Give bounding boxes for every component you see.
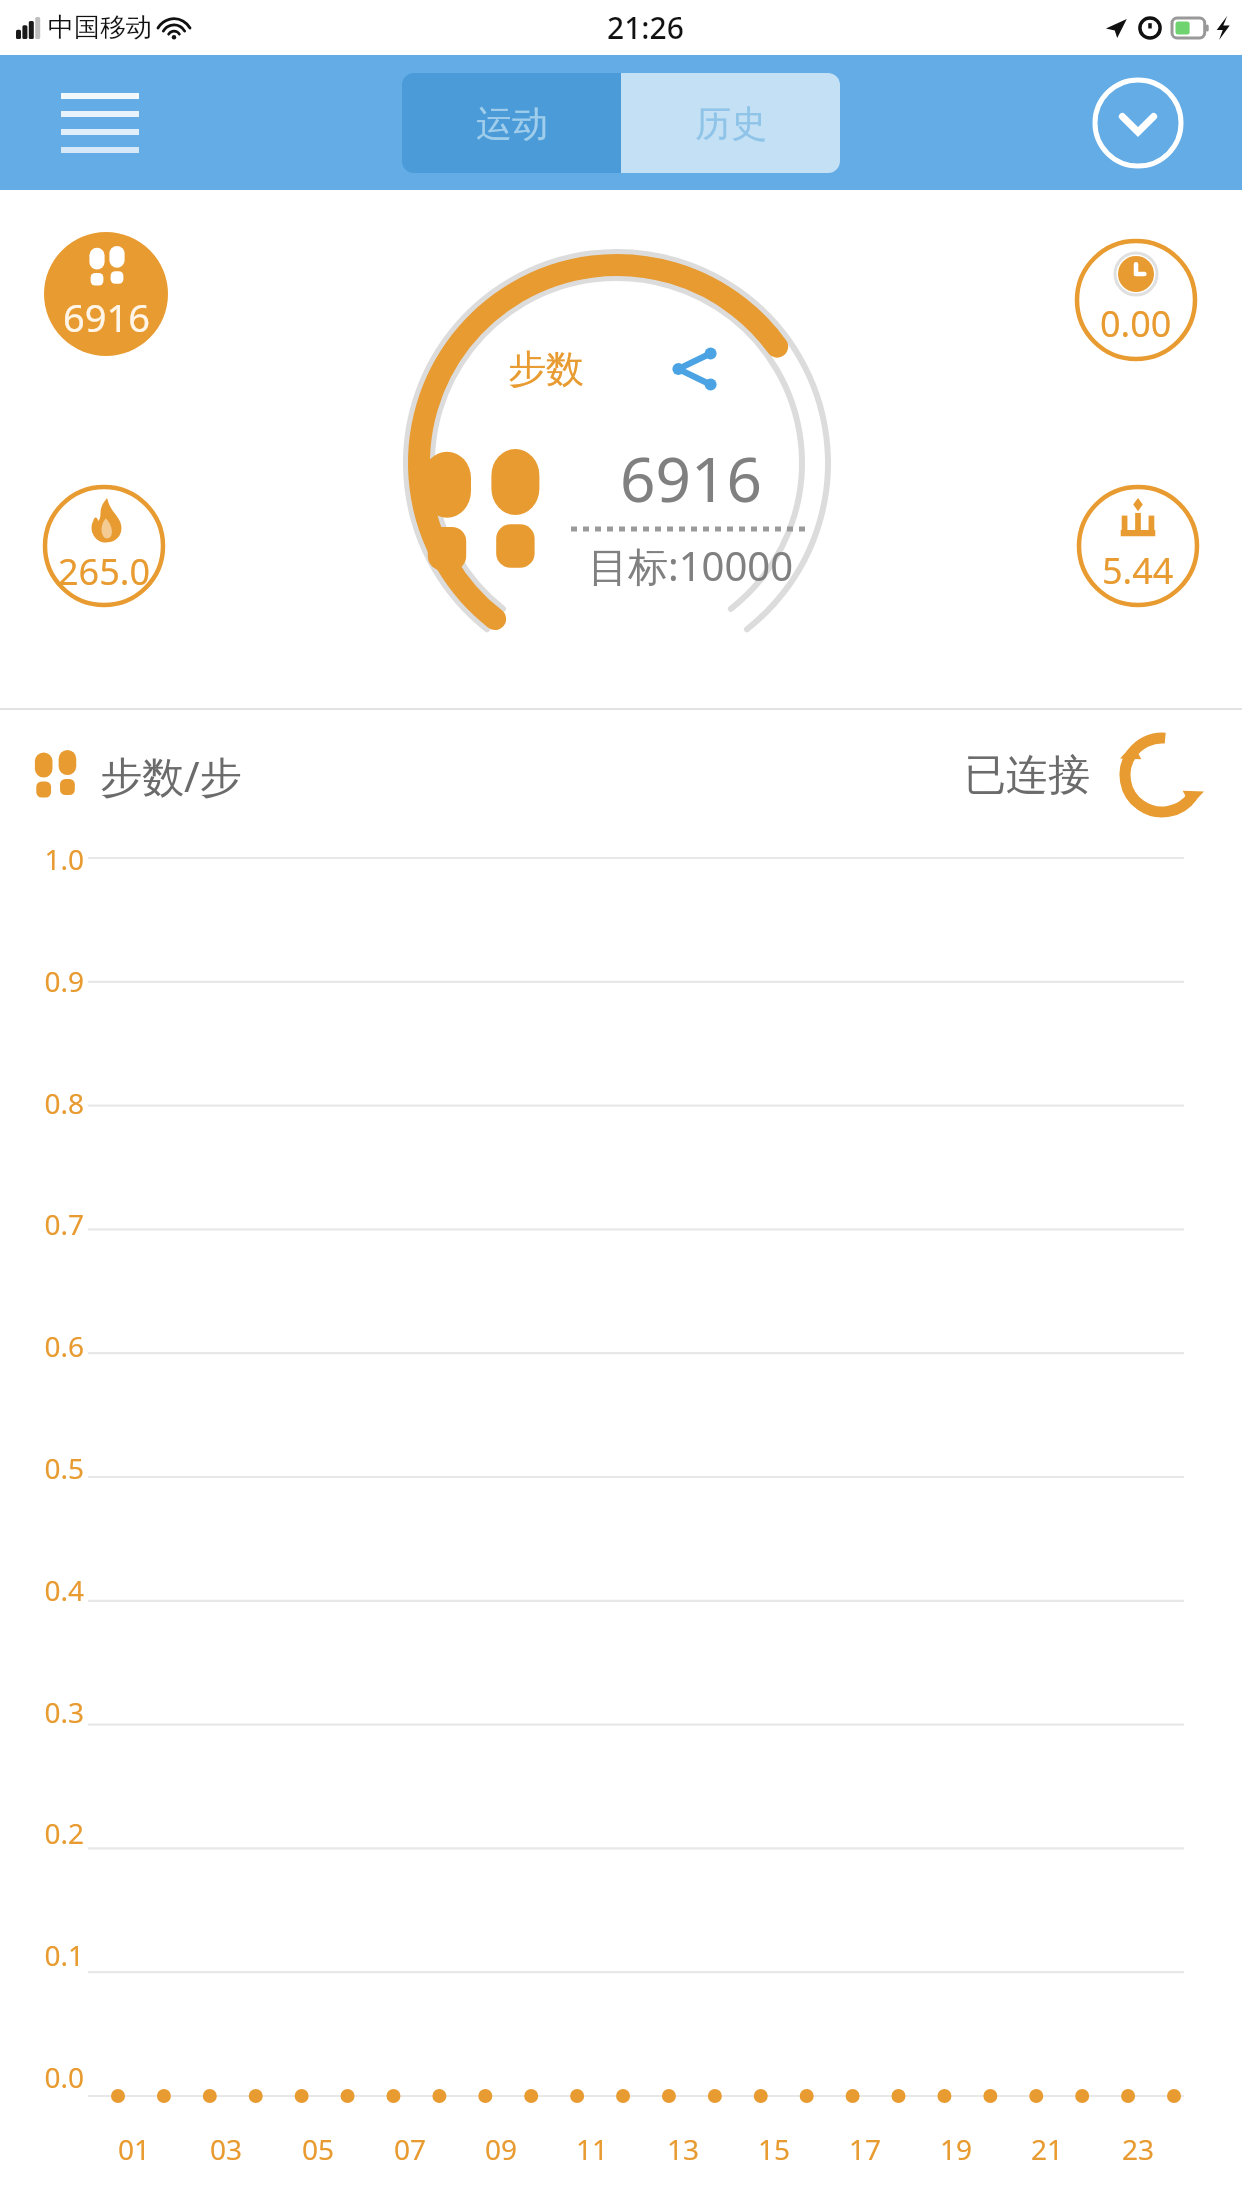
button[interactable]: Expand <box>1092 77 1184 169</box>
button[interactable]: Menu <box>52 88 148 158</box>
staticText: 0.2 <box>44 1814 84 1852</box>
button[interactable]: 运动 <box>402 73 621 173</box>
staticText: 6916 <box>63 291 150 343</box>
staticText: 步数/步 <box>100 747 242 804</box>
staticText: 0.3 <box>44 1693 84 1731</box>
staticText: 03 <box>210 2130 243 2168</box>
staticText: 历史 <box>695 101 767 146</box>
staticText: 步数 <box>508 345 584 393</box>
button[interactable]: 5.44 <box>1076 484 1200 608</box>
staticText: 已连接 <box>964 749 1090 802</box>
staticText: 运动 <box>476 101 548 146</box>
staticText: 01 <box>118 2130 151 2168</box>
staticText: 0.5 <box>44 1449 84 1487</box>
staticText: 0.7 <box>44 1205 84 1243</box>
button[interactable]: 0.00 <box>1074 238 1198 362</box>
staticText: 中国移动 <box>48 11 152 44</box>
staticText: 17 <box>849 2130 882 2168</box>
button[interactable]: 6916 <box>44 232 168 356</box>
staticText: 11 <box>576 2130 609 2168</box>
staticText: 23 <box>1122 2130 1155 2168</box>
button[interactable]: Share <box>664 338 726 400</box>
staticText: 09 <box>485 2130 518 2168</box>
button[interactable]: 265.0 <box>42 484 166 608</box>
staticText: 0.4 <box>44 1571 84 1609</box>
staticText: 19 <box>940 2130 973 2168</box>
staticText: 05 <box>302 2130 335 2168</box>
staticText: 265.0 <box>58 547 151 596</box>
staticText: 15 <box>758 2130 791 2168</box>
staticText: 21:26 <box>607 7 684 48</box>
staticText: 0.0 <box>44 2058 84 2096</box>
button[interactable]: Refresh <box>1116 729 1208 821</box>
staticText: 0.6 <box>44 1327 84 1365</box>
staticText: 6916 <box>620 436 762 520</box>
staticText: 21 <box>1031 2130 1064 2168</box>
button[interactable]: 历史 <box>621 73 840 173</box>
staticText: 0.8 <box>44 1084 84 1122</box>
staticText: 0.1 <box>44 1936 84 1974</box>
staticText: 07 <box>394 2130 427 2168</box>
staticText: 0.9 <box>44 962 84 1000</box>
staticText: 5.44 <box>1102 546 1174 595</box>
staticText: 1.0 <box>44 840 84 878</box>
staticText: 0.00 <box>1100 299 1172 348</box>
staticText: 13 <box>667 2130 700 2168</box>
staticText: 目标:10000 <box>588 538 794 593</box>
